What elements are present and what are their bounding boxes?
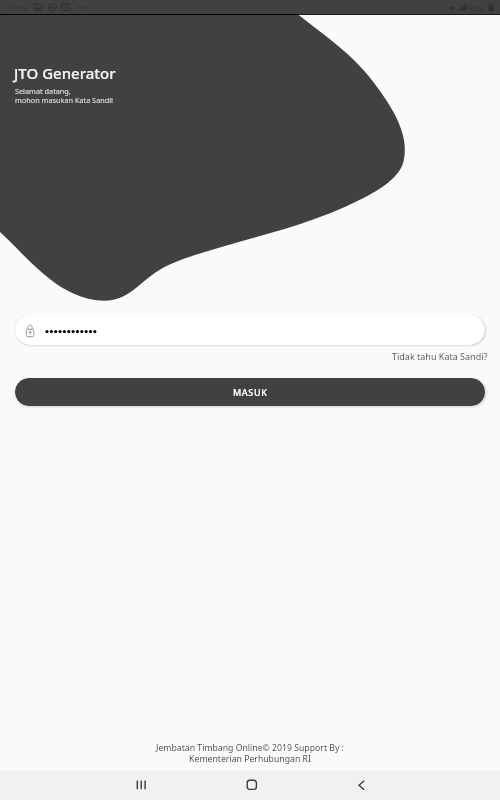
staticText: Tidak tahu Kata Sandi? — [392, 350, 488, 362]
button[interactable]: Back — [340, 770, 384, 800]
staticText: 80% — [469, 3, 484, 13]
staticText: Jembatan Timbang Online© 2019 Support By… — [0, 742, 500, 765]
staticText: JTO Generator — [14, 63, 116, 83]
staticText: MASUK — [233, 386, 268, 398]
button[interactable]: Tidak tahu Kata Sandi? — [392, 350, 488, 362]
button[interactable]: Home — [229, 770, 273, 800]
button[interactable]: Recent apps — [119, 770, 163, 800]
button[interactable]: MASUK — [15, 378, 485, 406]
staticText: 23:59 — [7, 3, 27, 13]
staticText: Selamat datang, mohon masukan Kata Sandi… — [15, 86, 114, 105]
button[interactable] — [15, 315, 485, 345]
